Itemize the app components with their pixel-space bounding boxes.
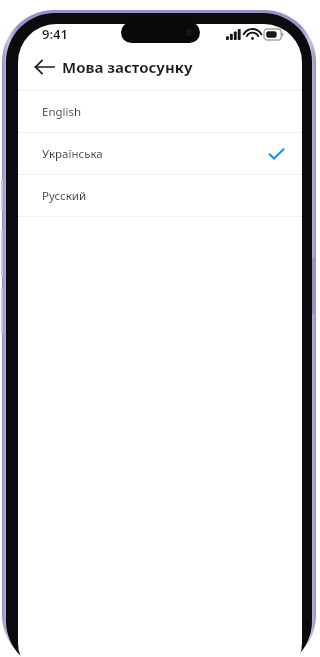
button[interactable]: Русский bbox=[18, 175, 302, 216]
button[interactable]: English bbox=[18, 91, 302, 132]
staticText: Мова застосунку bbox=[62, 57, 193, 77]
button[interactable]: Back bbox=[28, 51, 60, 83]
staticText: Українська bbox=[42, 146, 269, 162]
staticText: English bbox=[42, 104, 284, 120]
button[interactable]: Українська bbox=[18, 133, 302, 174]
staticText: 9:41 bbox=[42, 25, 68, 43]
staticText: Русский bbox=[42, 188, 284, 204]
